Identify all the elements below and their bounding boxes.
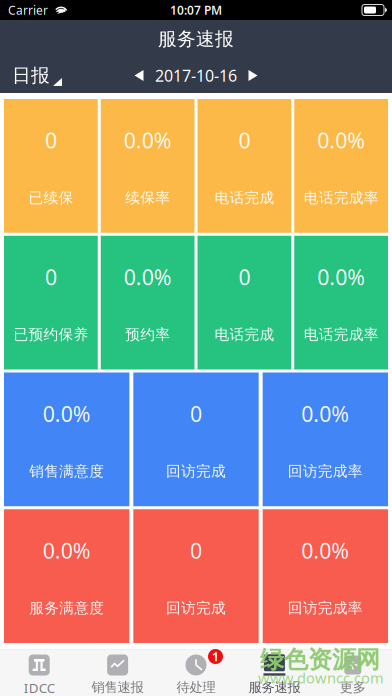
- button[interactable]: 0.0%: [4, 372, 129, 506]
- staticText: 销售满意度: [29, 462, 104, 480]
- button[interactable]: 服务速报: [235, 650, 314, 696]
- staticText: 0: [238, 263, 250, 291]
- staticText: 电话完成: [214, 189, 274, 207]
- staticText: 0: [238, 126, 250, 154]
- staticText: 0.0%: [317, 126, 365, 154]
- button[interactable]: 0: [197, 236, 291, 370]
- button[interactable]: 1: [157, 650, 235, 696]
- staticText: 0: [190, 399, 202, 428]
- button[interactable]: 0: [4, 236, 98, 370]
- staticText: 电话完成率: [304, 189, 379, 207]
- staticText: 续保率: [125, 189, 170, 207]
- staticText: 回访完成率: [288, 599, 363, 617]
- button[interactable]: 0: [133, 509, 259, 643]
- staticText: 回访完成: [166, 462, 226, 480]
- staticText: 0.0%: [124, 126, 172, 154]
- staticText: 0.0%: [43, 399, 91, 428]
- staticText: 服务速报: [248, 679, 300, 695]
- button[interactable]: Next day: [237, 60, 269, 90]
- button[interactable]: 0.0%: [263, 372, 388, 506]
- staticText: 0: [45, 263, 57, 291]
- button[interactable]: 0.0%: [263, 509, 388, 643]
- staticText: 1: [212, 648, 219, 664]
- staticText: 销售速报: [92, 679, 144, 695]
- staticText: 绿色资源网: [260, 645, 380, 674]
- staticText: IDCC: [24, 679, 55, 696]
- staticText: 已续保: [28, 189, 73, 207]
- staticText: 0.0%: [301, 536, 349, 564]
- button[interactable]: 0.0%: [4, 509, 129, 643]
- staticText: 0.0%: [317, 263, 365, 291]
- staticText: 0.0%: [301, 399, 349, 428]
- button[interactable]: IDCC: [0, 650, 78, 696]
- button[interactable]: 0.0%: [294, 99, 388, 233]
- button[interactable]: 0.0%: [101, 236, 195, 370]
- staticText: 10:07 PM: [170, 2, 222, 18]
- staticText: 回访完成: [166, 599, 226, 617]
- button[interactable]: 0: [4, 99, 98, 233]
- button[interactable]: 更多: [314, 650, 392, 696]
- staticText: 服务满意度: [29, 599, 104, 617]
- staticText: 电话完成率: [304, 325, 379, 343]
- button[interactable]: 0.0%: [101, 99, 195, 233]
- button[interactable]: 0.0%: [294, 236, 388, 370]
- staticText: www.downcc.com: [258, 668, 384, 687]
- staticText: 0: [45, 126, 57, 154]
- staticText: 更多: [340, 679, 366, 695]
- staticText: 电话完成: [214, 325, 274, 343]
- staticText: 预约率: [125, 325, 170, 343]
- button[interactable]: 销售速报: [78, 650, 157, 696]
- staticText: 待处理: [176, 679, 215, 695]
- staticText: 回访完成率: [288, 462, 363, 480]
- button[interactable]: 0: [197, 99, 291, 233]
- staticText: 2017-10-16: [155, 65, 237, 86]
- staticText: 0: [190, 536, 202, 564]
- staticText: 服务速报: [158, 27, 234, 50]
- button[interactable]: 0: [133, 372, 259, 506]
- staticText: 日报: [12, 64, 50, 87]
- staticText: Carrier: [8, 2, 48, 18]
- button[interactable]: Previous day: [123, 60, 155, 90]
- staticText: 0.0%: [124, 263, 172, 291]
- staticText: 已预约保养: [13, 325, 88, 343]
- button[interactable]: 日报: [0, 59, 70, 91]
- staticText: 0.0%: [43, 536, 91, 564]
